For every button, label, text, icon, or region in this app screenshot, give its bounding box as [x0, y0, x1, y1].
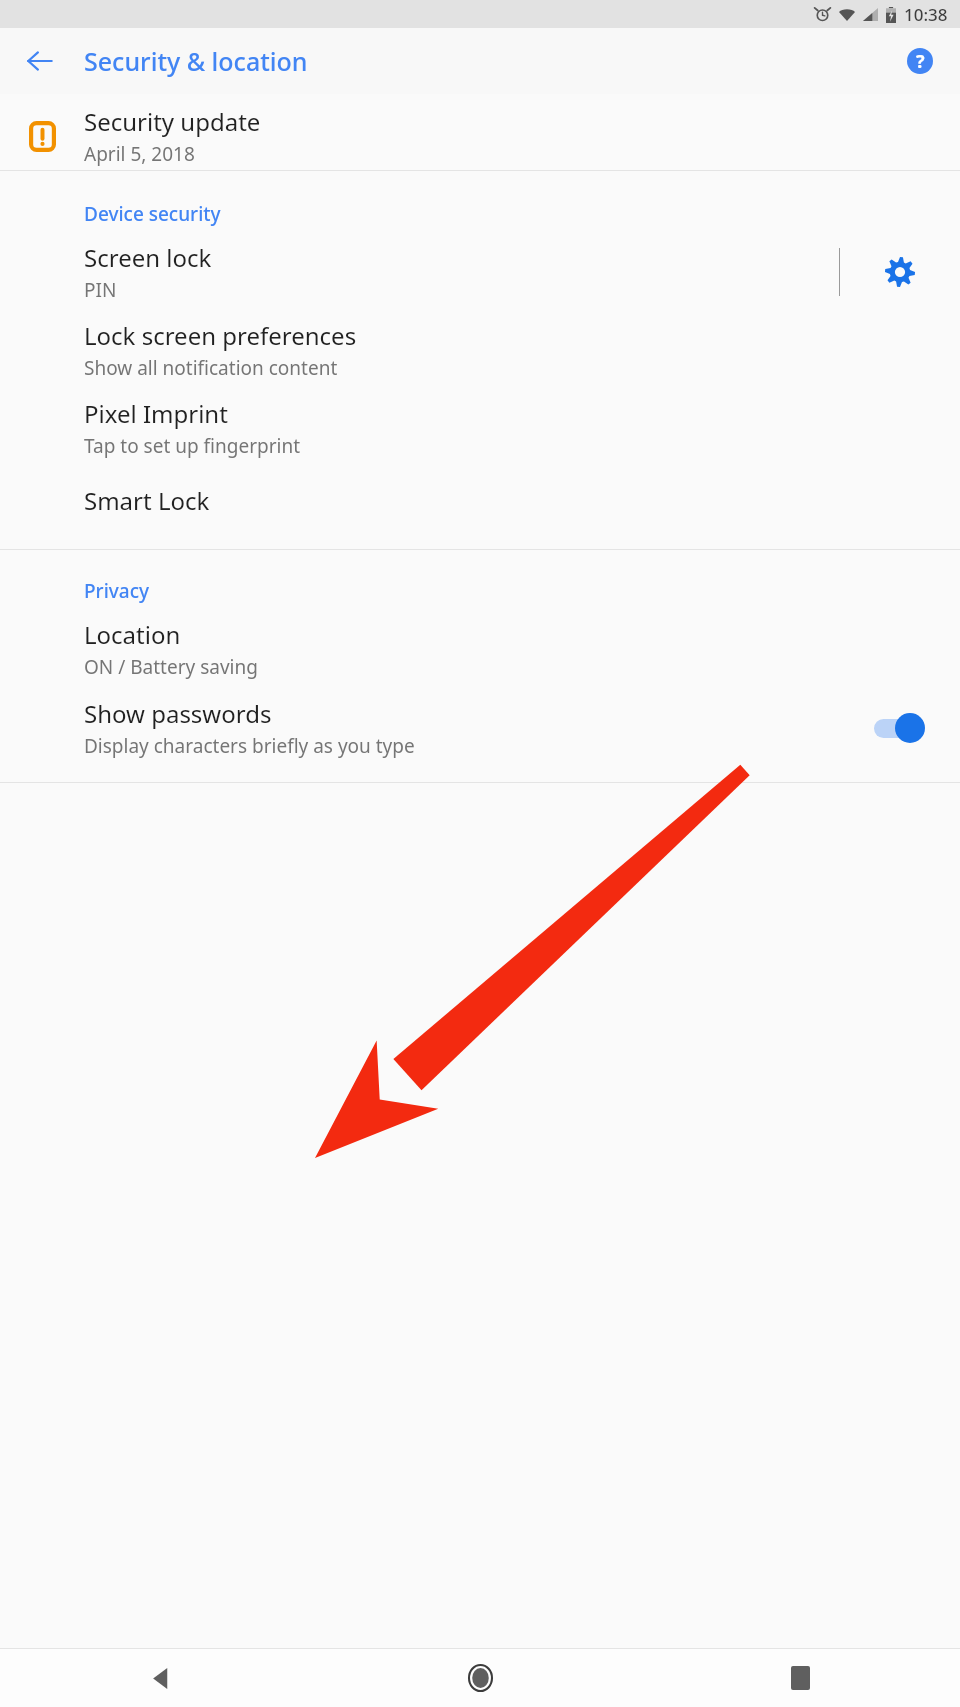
staticText: Show all notification content [84, 355, 338, 381]
button[interactable]: Pixel Imprint [0, 389, 960, 467]
staticText: Pixel Imprint [84, 397, 228, 430]
staticText: Smart Lock [84, 484, 210, 517]
staticText: Lock screen preferences [84, 319, 357, 352]
staticText: Screen lock [84, 241, 212, 274]
staticText: PIN [84, 277, 117, 303]
button[interactable]: Screen lock [0, 233, 839, 311]
staticText: Device security [84, 201, 221, 227]
staticText: April 5, 2018 [84, 141, 195, 167]
button[interactable]: Smart Lock [0, 467, 960, 533]
button[interactable]: Screen lock settings [840, 233, 960, 311]
staticText: Tap to set up fingerprint [84, 433, 301, 459]
staticText: 10:38 [904, 3, 948, 26]
staticText: Display characters briefly as you type [84, 733, 415, 759]
staticText: Show passwords [84, 697, 272, 730]
button[interactable]: Home [320, 1649, 640, 1707]
staticText: Privacy [84, 578, 149, 604]
button[interactable]: Security update [0, 102, 960, 170]
button[interactable]: Lock screen preferences [0, 311, 960, 389]
button[interactable]: Back [0, 1649, 320, 1707]
staticText: ? [916, 49, 925, 74]
button[interactable]: Help [896, 37, 944, 85]
staticText: Location [84, 618, 181, 651]
button[interactable]: Show passwords [0, 688, 960, 768]
staticText: Security update [84, 105, 261, 138]
button[interactable]: Location [0, 610, 960, 688]
button[interactable]: Navigate up [16, 37, 64, 85]
staticText: ON / Battery saving [84, 654, 258, 680]
button[interactable]: Recent apps [640, 1649, 960, 1707]
staticText: Security & location [84, 44, 308, 78]
